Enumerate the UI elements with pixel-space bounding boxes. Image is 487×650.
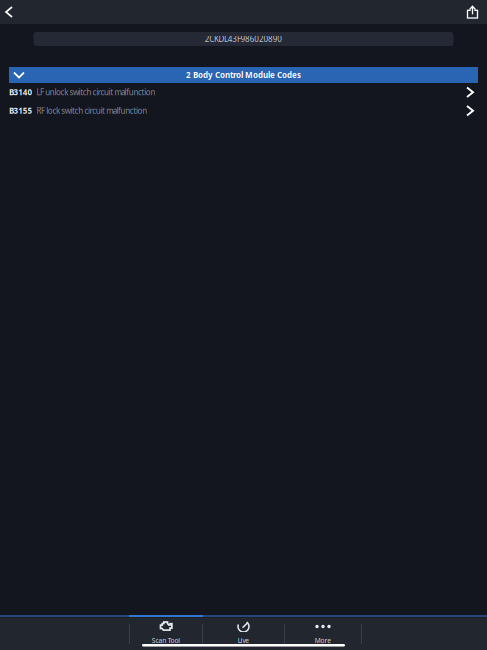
staticText: Scan Tool xyxy=(152,636,180,645)
staticText: B3155 xyxy=(9,105,32,116)
button[interactable]: B3155 xyxy=(0,101,487,120)
staticText: 2CKDL43F986020890 xyxy=(205,34,282,44)
staticText: LF unlock switch circuit malfunction xyxy=(36,87,155,97)
staticText: Live xyxy=(238,636,249,645)
staticText: 2 Body Control Module Codes xyxy=(186,70,301,80)
staticText: RF lock switch circuit malfunction xyxy=(36,105,147,116)
button[interactable]: More xyxy=(285,618,361,650)
button[interactable]: B3140 xyxy=(0,83,487,101)
button[interactable]: Scan Tool xyxy=(130,618,202,650)
button[interactable]: Live xyxy=(203,618,284,650)
button[interactable]: 2 Body Control Module Codes xyxy=(0,67,487,83)
staticText: More xyxy=(315,636,331,645)
button[interactable]: Share xyxy=(458,0,487,24)
button[interactable]: Back xyxy=(0,0,18,24)
staticText: B3140 xyxy=(9,87,32,97)
